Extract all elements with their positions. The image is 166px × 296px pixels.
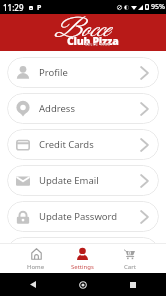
staticText: Profile [39,66,68,79]
button[interactable]: Home [13,244,59,273]
staticText: Home [27,263,45,271]
staticText: Update Email [39,174,99,187]
staticText: Credit Cards [39,138,94,151]
button[interactable]: Update Password [7,201,159,232]
button[interactable]: Address [7,93,159,124]
button[interactable]: Profile [7,57,159,88]
button[interactable]: Cart [106,244,153,273]
staticText: Club Pizza [67,34,119,48]
staticText: Bocce [54,15,109,46]
button[interactable]: Update Email [7,165,159,196]
button[interactable]: Credit Cards [7,129,159,160]
button[interactable]: Settings [59,244,106,273]
other: Back [30,281,36,288]
staticText: 95% [151,2,165,12]
staticText: 11:29 [3,2,24,13]
staticText: Settings [71,263,94,271]
button[interactable]: Update Phone [7,237,159,243]
other: Home [79,281,87,289]
staticText: SINCE 1966 [85,42,111,47]
staticText: P [37,3,42,13]
staticText: Cart [124,263,136,271]
staticText: Update Password [39,210,118,223]
staticText: Address [39,102,75,115]
